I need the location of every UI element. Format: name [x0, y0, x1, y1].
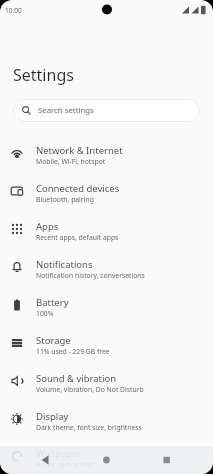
- staticText: Battery: [36, 296, 69, 309]
- button[interactable]: Search settings: [13, 99, 200, 122]
- button[interactable]: Notifications: [0, 248, 213, 286]
- button[interactable]: Network & Internet: [0, 134, 213, 172]
- button[interactable]: Wallpaper: [0, 438, 213, 474]
- staticText: Home, lock screen: [36, 460, 95, 469]
- staticText: Notifications: [36, 258, 93, 271]
- staticText: Apps: [36, 220, 59, 233]
- staticText: Mobile, Wi-Fi, hotspot: [36, 157, 106, 166]
- button[interactable]: Battery: [0, 286, 213, 324]
- button[interactable]: Connected devices: [0, 172, 213, 210]
- staticText: Connected devices: [36, 182, 120, 195]
- staticText: Settings: [13, 64, 74, 86]
- staticText: 10:00: [5, 6, 22, 15]
- staticText: Storage: [36, 334, 71, 347]
- button[interactable]: Apps: [0, 210, 213, 248]
- button[interactable]: Display: [0, 400, 213, 438]
- staticText: Network & Internet: [36, 144, 123, 157]
- button[interactable]: Sound & vibration: [0, 362, 213, 400]
- staticText: Search settings: [38, 105, 94, 116]
- staticText: Recent apps, default apps: [36, 233, 119, 242]
- staticText: 100%: [36, 309, 54, 318]
- staticText: Bluetooth, pairing: [36, 195, 94, 204]
- staticText: Display: [36, 410, 69, 423]
- staticText: Notification history, conversations: [36, 271, 145, 280]
- button[interactable]: Storage: [0, 324, 213, 362]
- staticText: Sound & vibration: [36, 372, 117, 385]
- staticText: Volume, vibration, Do Not Disturb: [36, 385, 144, 394]
- staticText: 11% used - 229 GB free: [36, 347, 110, 356]
- staticText: Dark theme, font size, brightness: [36, 423, 142, 432]
- staticText: Wallpaper: [36, 447, 82, 460]
